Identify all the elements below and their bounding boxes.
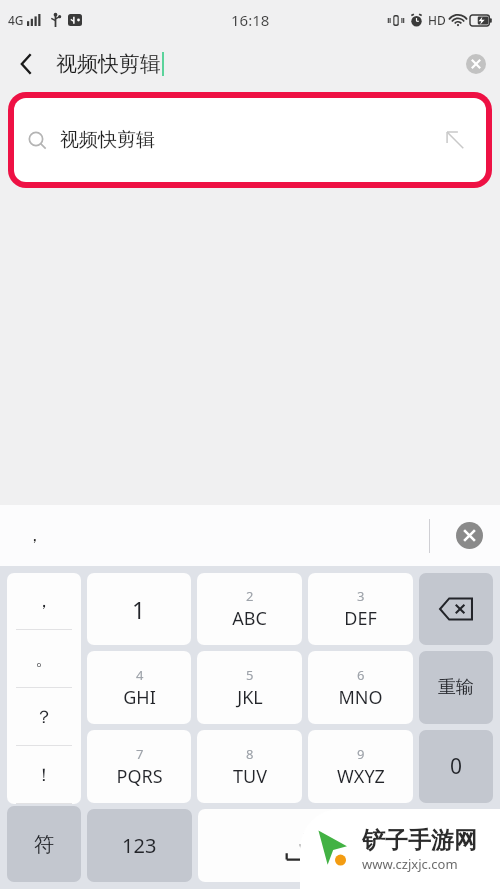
staticText: 搜索: [439, 835, 473, 856]
button[interactable]: ！: [7, 746, 81, 804]
staticText: ，: [26, 525, 43, 546]
button[interactable]: Clear text: [452, 40, 500, 88]
staticText: 8: [246, 745, 254, 763]
staticText: DEF: [344, 606, 377, 631]
staticText: 视频快剪辑: [60, 128, 155, 152]
button[interactable]: ，: [18, 521, 51, 550]
staticText: GHI: [123, 685, 156, 710]
button[interactable]: Space, voice input: [198, 809, 413, 882]
staticText: 4G: [8, 12, 24, 28]
staticText: ABC: [232, 606, 267, 631]
staticText: JKL: [237, 685, 263, 710]
staticText: WXYZ: [337, 764, 385, 789]
staticText: 视频快剪辑: [56, 51, 161, 77]
button[interactable]: 8: [197, 730, 302, 803]
button[interactable]: Backspace: [419, 573, 493, 645]
staticText: ！: [35, 764, 53, 787]
staticText: 123: [122, 832, 157, 859]
staticText: ？: [35, 706, 53, 729]
button[interactable]: Close keyboard: [438, 505, 500, 566]
button[interactable]: 2: [197, 573, 302, 645]
staticText: ，: [35, 590, 53, 613]
button[interactable]: 5: [197, 651, 302, 724]
staticText: 7: [136, 745, 144, 763]
staticText: 0: [450, 752, 463, 781]
staticText: www.czjxjc.com: [362, 855, 458, 873]
staticText: TUV: [233, 764, 267, 789]
button[interactable]: 1: [87, 573, 191, 645]
button[interactable]: 6: [308, 651, 413, 724]
staticText: 2: [246, 587, 254, 605]
button[interactable]: 0: [419, 730, 493, 803]
button[interactable]: 4: [87, 651, 191, 724]
staticText: HD: [428, 12, 446, 28]
staticText: 铲子手游网: [362, 826, 477, 855]
button[interactable]: ？: [7, 688, 81, 746]
button[interactable]: 123: [87, 809, 192, 882]
staticText: MNO: [338, 685, 383, 710]
button[interactable]: 。: [7, 630, 81, 688]
button[interactable]: Back: [0, 40, 52, 88]
button[interactable]: 7: [87, 730, 191, 803]
button[interactable]: 3: [308, 573, 413, 645]
button[interactable]: 重输: [419, 651, 493, 724]
staticText: 4: [136, 666, 144, 684]
button[interactable]: 搜索: [419, 809, 493, 882]
button[interactable]: ，: [7, 573, 81, 630]
staticText: 。: [35, 648, 53, 671]
staticText: PQRS: [116, 764, 163, 789]
staticText: 重输: [438, 676, 474, 699]
button[interactable]: 视频快剪辑: [14, 98, 486, 182]
staticText: 9: [357, 745, 365, 763]
staticText: 1: [132, 594, 146, 625]
staticText: 6: [357, 666, 365, 684]
staticText: 16:18: [231, 10, 270, 30]
staticText: 5: [246, 666, 254, 684]
staticText: 3: [357, 587, 365, 605]
button[interactable]: 符: [7, 806, 81, 882]
button[interactable]: Fill search box: [438, 123, 472, 157]
staticText: 符: [34, 832, 54, 857]
button[interactable]: 9: [308, 730, 413, 803]
